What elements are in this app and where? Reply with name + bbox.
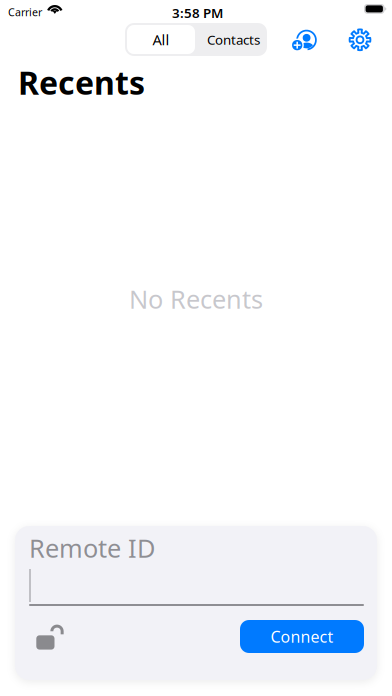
button[interactable]: Settings bbox=[340, 23, 380, 56]
staticText: Recents bbox=[18, 61, 145, 103]
staticText: No Recents bbox=[129, 282, 263, 316]
staticText: Remote ID bbox=[29, 531, 155, 565]
button[interactable]: Connect bbox=[240, 620, 364, 653]
staticText: Connect bbox=[270, 626, 333, 647]
staticText: Carrier bbox=[8, 5, 42, 19]
button[interactable]: All bbox=[127, 25, 195, 54]
button[interactable]: Add Contact bbox=[286, 23, 326, 56]
staticText: 3:58 PM bbox=[172, 4, 223, 22]
staticText: Contacts bbox=[207, 31, 260, 48]
button[interactable]: Contacts bbox=[195, 25, 265, 54]
staticText: All bbox=[152, 30, 169, 49]
